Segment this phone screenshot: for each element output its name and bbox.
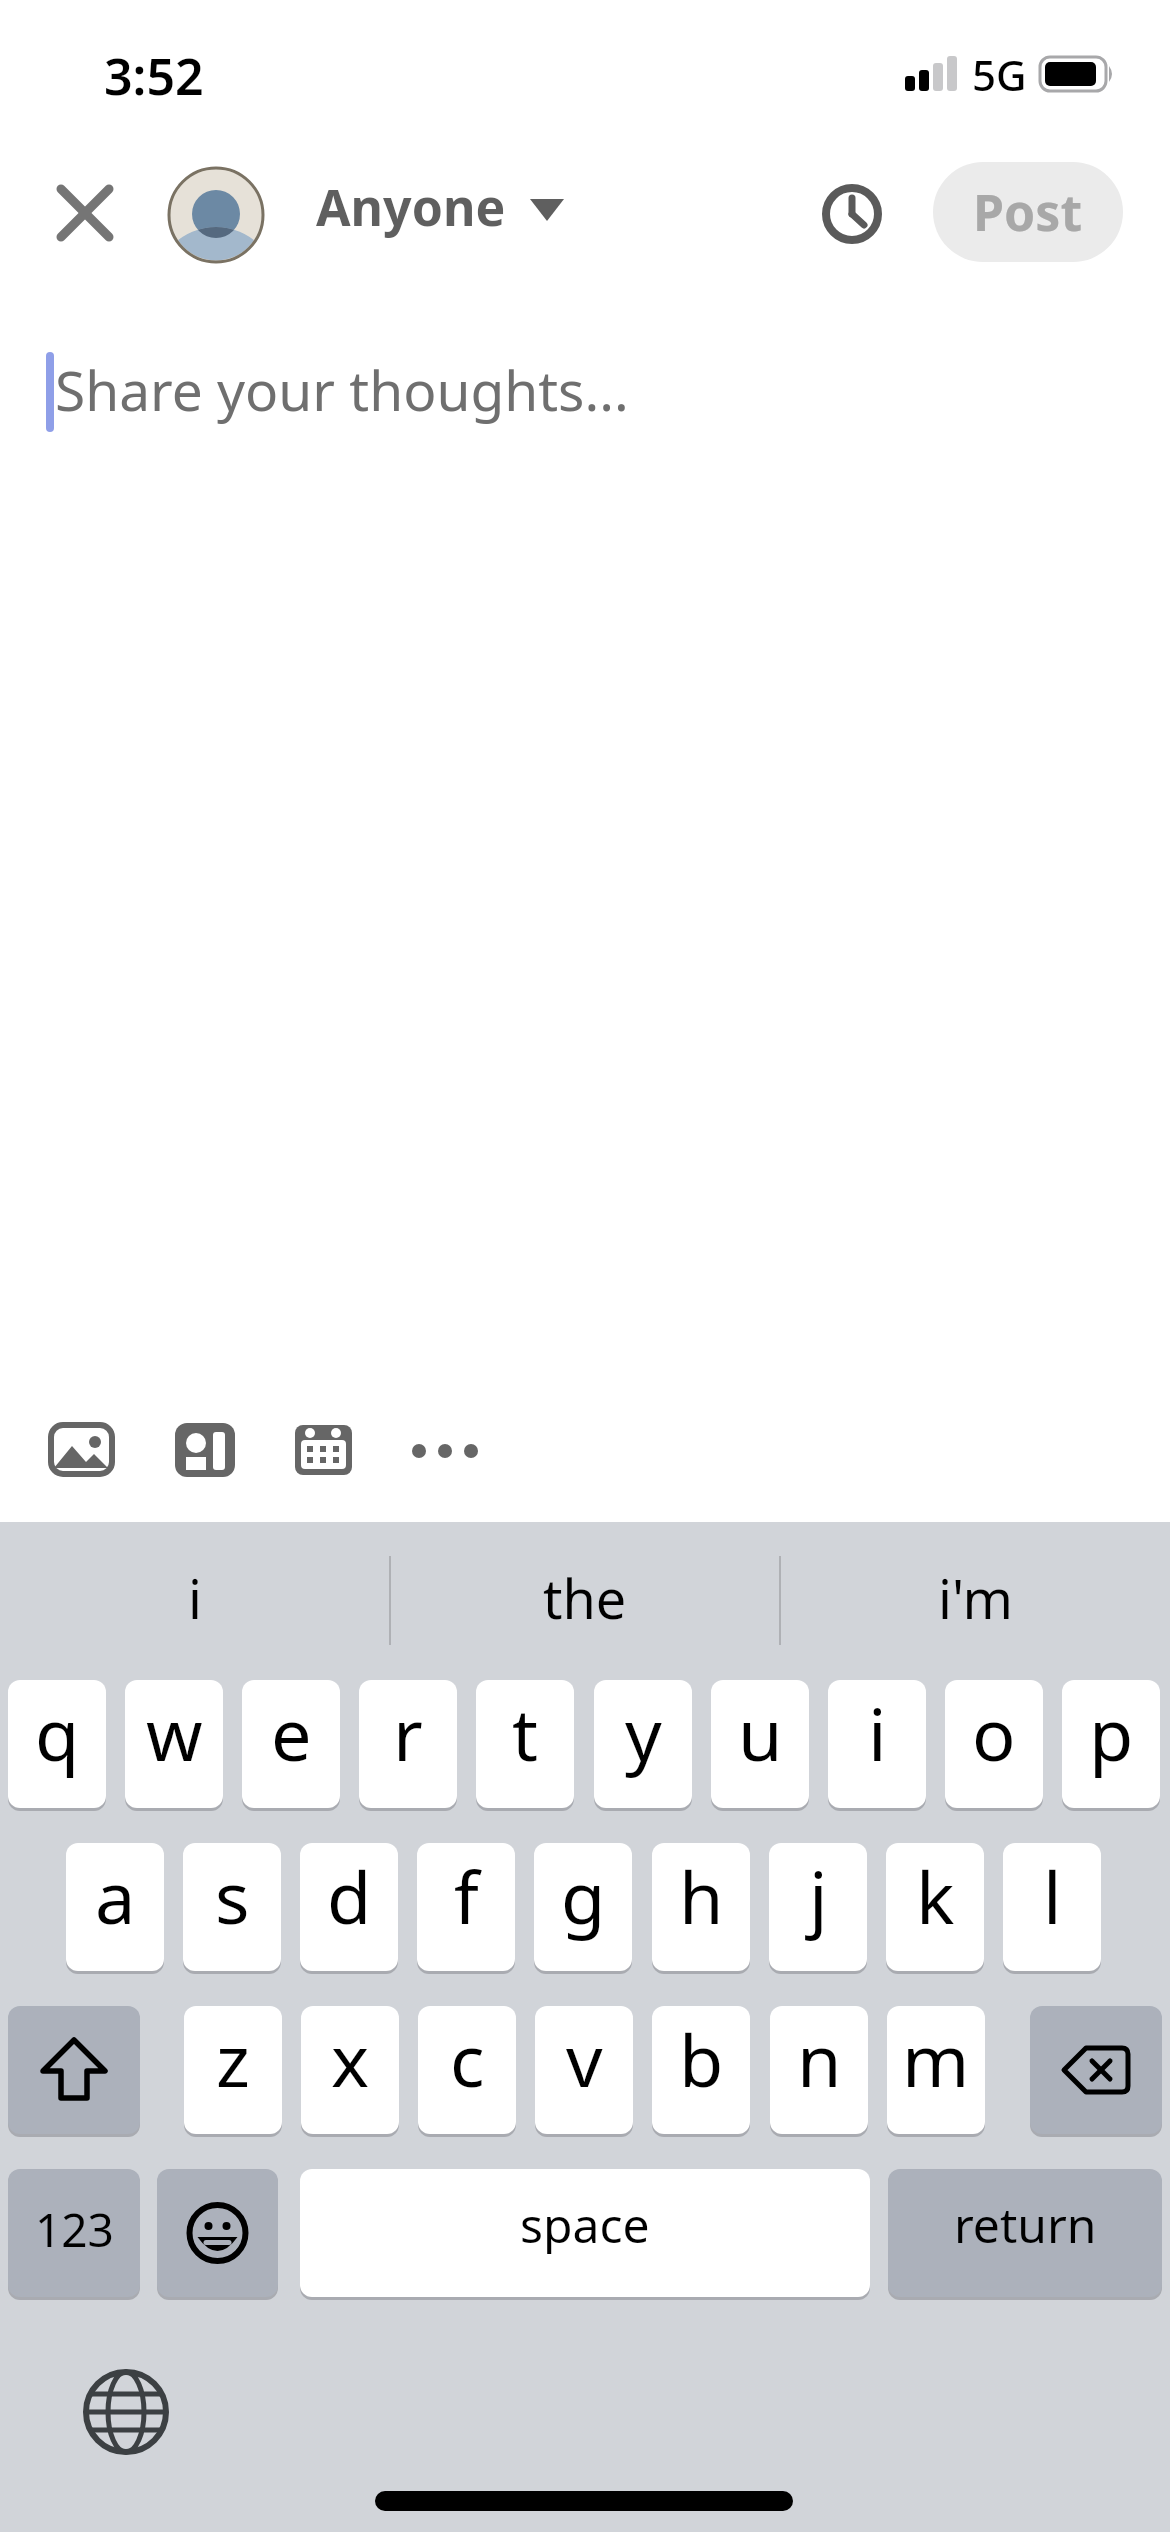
button[interactable]: d <box>300 1843 398 1971</box>
button[interactable]: q <box>8 1680 106 1808</box>
staticText: h <box>679 1847 724 1945</box>
staticText: u <box>738 1684 783 1782</box>
staticText: j <box>809 1847 828 1945</box>
button[interactable]: y <box>594 1680 692 1808</box>
button[interactable] <box>157 2169 278 2297</box>
staticText: 123 <box>35 2198 114 2261</box>
staticText: a <box>95 1847 136 1945</box>
button[interactable] <box>174 1422 236 1480</box>
button[interactable]: x <box>301 2006 399 2134</box>
staticText: n <box>797 2010 842 2108</box>
button[interactable]: f <box>417 1843 515 1971</box>
staticText: return <box>954 2192 1097 2257</box>
button[interactable]: i <box>828 1680 926 1808</box>
staticText: z <box>216 2010 250 2108</box>
button[interactable]: p <box>1062 1680 1160 1808</box>
button[interactable] <box>1030 2006 1162 2134</box>
staticText: f <box>454 1847 479 1945</box>
button[interactable] <box>405 1436 485 1466</box>
staticText: p <box>1089 1684 1134 1782</box>
staticText: b <box>679 2010 724 2108</box>
button[interactable]: g <box>534 1843 632 1971</box>
staticText: d <box>327 1847 372 1945</box>
button[interactable]: z <box>184 2006 282 2134</box>
button[interactable] <box>8 2006 140 2134</box>
staticText: space <box>520 2192 650 2257</box>
button[interactable]: m <box>887 2006 985 2134</box>
staticText: Post <box>973 178 1083 246</box>
staticText: q <box>35 1684 80 1782</box>
button[interactable]: u <box>711 1680 809 1808</box>
button[interactable]: 123 <box>8 2169 140 2297</box>
staticText: t <box>512 1684 538 1782</box>
staticText: l <box>1043 1847 1062 1945</box>
button[interactable]: space <box>300 2169 870 2297</box>
staticText: 3:52 <box>104 42 204 110</box>
button[interactable]: Post <box>933 162 1123 262</box>
button[interactable]: h <box>652 1843 750 1971</box>
staticText: Share your thoughts... <box>55 352 629 427</box>
button[interactable]: Anyone <box>316 173 506 241</box>
button[interactable]: r <box>359 1680 457 1808</box>
button[interactable]: n <box>770 2006 868 2134</box>
button[interactable] <box>48 1422 118 1480</box>
staticText: s <box>215 1847 250 1945</box>
button[interactable] <box>82 2368 170 2456</box>
button[interactable]: b <box>652 2006 750 2134</box>
staticText: w <box>146 1684 203 1782</box>
button[interactable]: k <box>886 1843 984 1971</box>
button[interactable]: s <box>183 1843 281 1971</box>
staticText: r <box>393 1684 423 1782</box>
staticText: o <box>972 1684 1016 1782</box>
button[interactable] <box>294 1422 354 1478</box>
staticText: y <box>625 1684 662 1782</box>
button[interactable]: a <box>66 1843 164 1971</box>
staticText: Anyone <box>316 173 506 241</box>
staticText: x <box>331 2010 370 2108</box>
staticText: 5G <box>972 46 1027 103</box>
staticText: v <box>566 2010 603 2108</box>
button[interactable]: e <box>242 1680 340 1808</box>
button[interactable]: j <box>769 1843 867 1971</box>
button[interactable]: return <box>888 2169 1162 2297</box>
staticText: m <box>902 2010 970 2108</box>
staticText: i <box>868 1684 887 1782</box>
button[interactable]: o <box>945 1680 1043 1808</box>
staticText: the <box>543 1561 627 1635</box>
button[interactable]: t <box>476 1680 574 1808</box>
button[interactable] <box>822 184 882 244</box>
staticText: e <box>271 1684 312 1782</box>
button[interactable]: l <box>1003 1843 1101 1971</box>
staticText: i'm <box>938 1561 1013 1635</box>
button[interactable]: c <box>418 2006 516 2134</box>
staticText: i <box>188 1561 202 1635</box>
button[interactable]: v <box>535 2006 633 2134</box>
staticText: c <box>450 2010 485 2108</box>
staticText: g <box>561 1847 606 1945</box>
staticText: k <box>916 1847 955 1945</box>
button[interactable] <box>48 176 122 250</box>
button[interactable]: w <box>125 1680 223 1808</box>
